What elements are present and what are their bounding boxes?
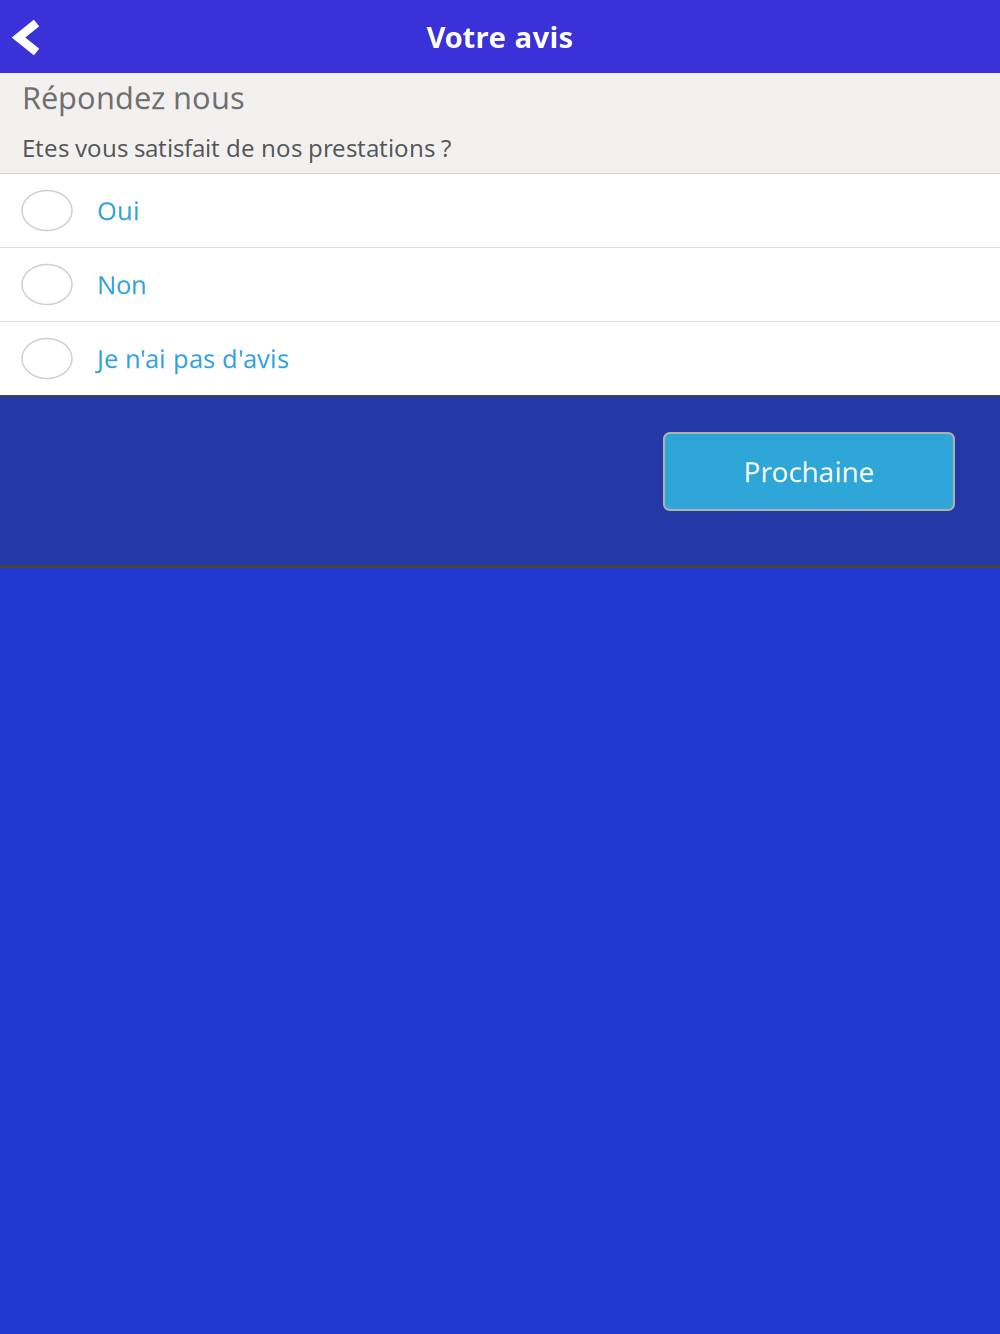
staticText: Etes vous satisfait de nos prestations ? (22, 132, 451, 164)
staticText: Non (97, 268, 147, 301)
button[interactable]: Prochaine (664, 433, 954, 510)
staticText: Prochaine (743, 453, 874, 490)
button[interactable]: Non (0, 248, 1000, 321)
button[interactable]: Je n'ai pas d'avis (0, 322, 1000, 395)
staticText: Répondez nous (22, 77, 245, 118)
staticText: Oui (97, 194, 140, 227)
button[interactable]: Back (0, 0, 53, 73)
staticText: Votre avis (426, 17, 573, 56)
button[interactable]: Oui (0, 174, 1000, 247)
staticText: Je n'ai pas d'avis (97, 342, 289, 375)
